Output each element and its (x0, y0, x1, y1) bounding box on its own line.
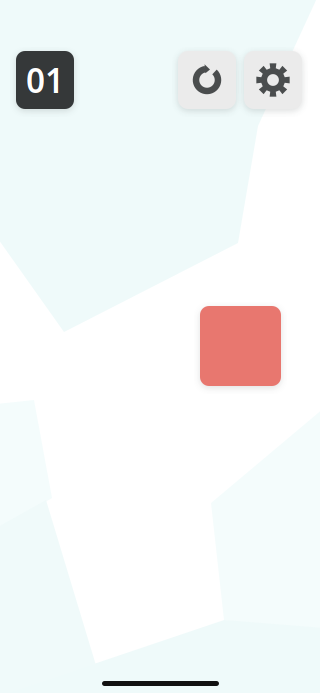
staticText: 01 (26, 58, 64, 102)
button[interactable]: Settings (244, 51, 302, 109)
button[interactable]: Restart (178, 51, 236, 109)
